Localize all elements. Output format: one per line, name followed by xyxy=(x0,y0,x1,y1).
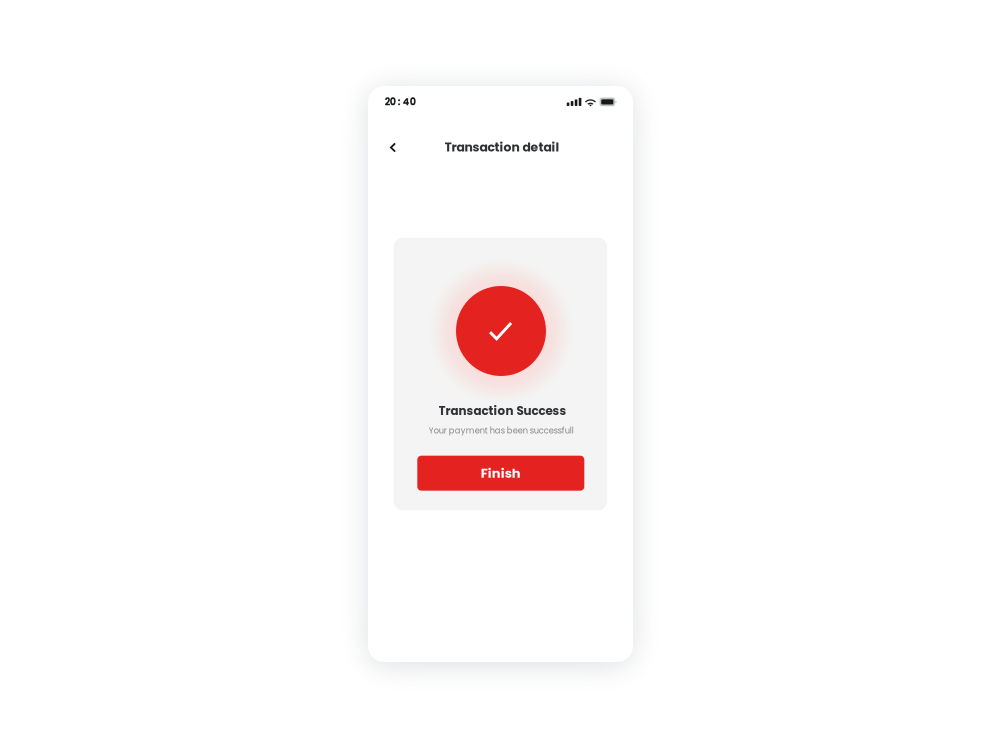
staticText: Transaction Success xyxy=(438,402,566,419)
staticText: Finish xyxy=(481,464,521,482)
staticText: Your payment has been successfull xyxy=(429,425,574,436)
staticText: 20 : 40 xyxy=(385,95,416,109)
button[interactable]: Back xyxy=(378,132,408,162)
staticText: Transaction detail xyxy=(444,138,559,156)
button[interactable]: Finish xyxy=(417,456,584,491)
